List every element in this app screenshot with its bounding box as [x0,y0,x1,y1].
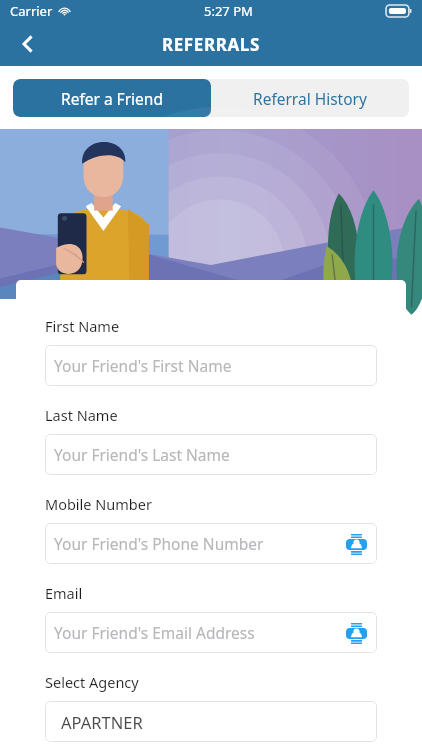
button[interactable]: Pick from contacts [343,620,369,646]
staticText: Your Friend's Email Address [54,622,255,643]
staticText: First Name [45,316,120,336]
button[interactable]: Referral History [211,79,409,117]
staticText: Your Friend's First Name [54,355,232,376]
staticText: Last Name [45,405,118,425]
staticText: Referral History [253,88,367,109]
button[interactable]: Your Friend's Phone Number [45,523,377,564]
staticText: Your Friend's Last Name [54,444,230,465]
button[interactable]: APARTNER [45,701,377,742]
staticText: Your Friend's Phone Number [54,533,264,554]
button[interactable]: Your Friend's First Name [45,345,377,386]
staticText: REFERRALS [162,33,260,56]
staticText: APARTNER [61,711,143,733]
button[interactable]: Back [8,24,48,64]
staticText: Mobile Number [45,494,152,514]
staticText: Select Agency [45,672,139,692]
button[interactable]: Your Friend's Last Name [45,434,377,475]
staticText: 5:27 PM [204,2,253,20]
button[interactable]: Refer a Friend [13,79,211,117]
button[interactable]: Your Friend's Email Address [45,612,377,653]
button[interactable]: Pick from contacts [343,531,369,557]
staticText: Refer a Friend [61,88,163,109]
staticText: Email [45,583,83,603]
staticText: Carrier [10,2,53,20]
